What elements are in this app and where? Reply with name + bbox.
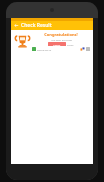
staticText: Congratulations! [44,32,78,37]
staticText: You won the prize [51,38,72,41]
staticText: Check Result [21,22,52,29]
button[interactable]: Share [80,47,85,51]
button[interactable]: Congratulations! [13,32,91,51]
button[interactable]: Back [13,22,20,29]
staticText: 10000 [53,43,61,46]
staticText: Coins [67,43,74,46]
staticText: 9876543210 [37,48,52,51]
button[interactable]: 10000 [48,42,66,46]
button[interactable]: Wallet [32,47,36,51]
